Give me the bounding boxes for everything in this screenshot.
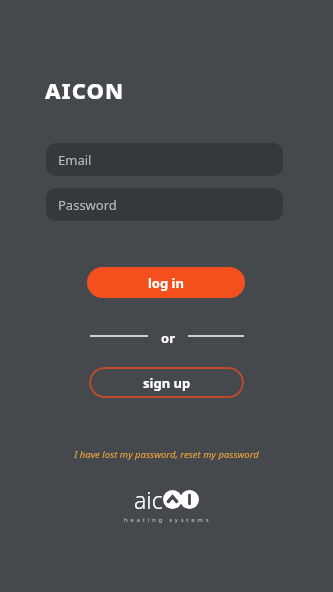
staticText: AICON	[45, 75, 124, 105]
button[interactable]: log in	[87, 267, 245, 298]
staticText: or	[161, 329, 175, 343]
staticText: aic	[134, 484, 163, 515]
staticText: Password	[58, 196, 117, 214]
button[interactable]: Email	[46, 143, 283, 176]
button[interactable]: I have lost my password, reset my passwo…	[0, 446, 333, 462]
staticText: h e a t i n g s y s t e m s	[124, 516, 210, 524]
staticText: Email	[58, 151, 92, 169]
button[interactable]: sign up	[89, 367, 244, 398]
staticText: I have lost my password, reset my passwo…	[74, 448, 259, 461]
staticText: sign up	[143, 374, 191, 392]
staticText: log in	[148, 274, 184, 292]
button[interactable]: Password	[46, 188, 283, 221]
